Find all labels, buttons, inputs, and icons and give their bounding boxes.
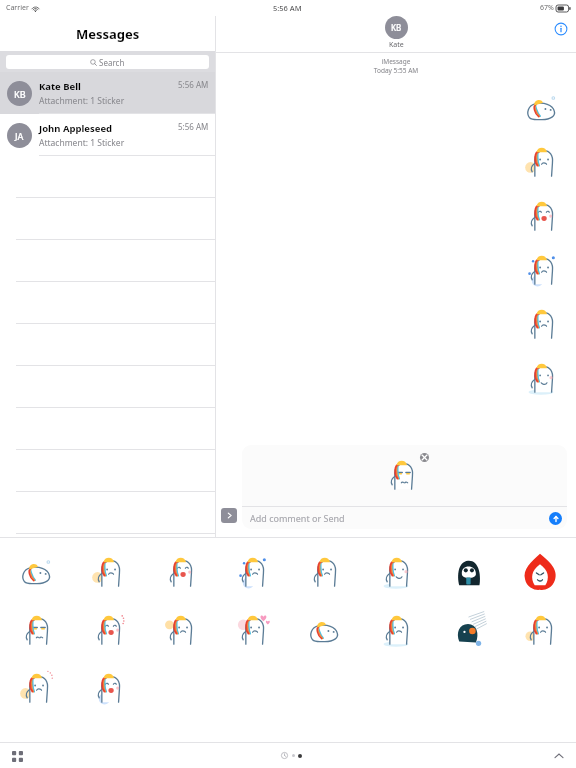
staticText: Today 5:55 AM [216, 66, 576, 75]
staticText: Attachment: 1 Sticker [39, 95, 125, 107]
button[interactable]: JA [0, 114, 215, 156]
button[interactable]: Sticker 7 [442, 547, 494, 599]
staticText: Attachment: 1 Sticker [39, 137, 125, 149]
button[interactable]: Sticker 12 [226, 605, 278, 657]
staticText: Kate Bell [39, 80, 81, 93]
button[interactable]: KB [385, 16, 408, 50]
staticText: KB [14, 88, 26, 100]
button[interactable]: Sticker 1 [10, 547, 62, 599]
button[interactable]: Sticker 9 [10, 605, 62, 657]
button[interactable]: Sticker 5 [298, 547, 350, 599]
button[interactable]: Sticker 13 [298, 605, 350, 657]
staticText: 5:56 AM [178, 121, 209, 132]
staticText: John Appleseed [39, 122, 113, 135]
staticText: 5:56 AM [178, 79, 209, 90]
button[interactable]: Sticker 10 [82, 605, 134, 657]
button[interactable]: Remove sticker [420, 453, 429, 462]
button[interactable]: Sticker 15 [442, 605, 494, 657]
button[interactable]: Sticker message [514, 136, 568, 190]
staticText: 67% [540, 3, 554, 13]
staticText: Add comment or Send [250, 512, 345, 524]
staticText: Search [99, 57, 125, 68]
button[interactable]: Sticker 2 [82, 547, 134, 599]
button[interactable]: Search [6, 55, 209, 69]
button[interactable]: App drawer [9, 748, 25, 764]
button[interactable]: Sticker message [514, 190, 568, 244]
staticText: Kate [389, 40, 404, 50]
button[interactable]: Sticker 14 [370, 605, 422, 657]
button[interactable]: Send [549, 512, 562, 525]
button[interactable]: Add comment or Send [242, 507, 567, 529]
staticText: KB [391, 22, 402, 33]
button[interactable]: Sticker message [514, 352, 568, 406]
button[interactable]: Sticker 18 [82, 663, 134, 715]
button[interactable]: Collapse [551, 748, 567, 764]
staticText: JA [15, 130, 24, 142]
button[interactable]: Sticker 17 [10, 663, 62, 715]
button[interactable]: Sticker 16 [514, 605, 566, 657]
button[interactable]: Sticker 4 [226, 547, 278, 599]
button[interactable]: Sticker message [514, 298, 568, 352]
button[interactable]: Sticker 8 [514, 547, 566, 599]
button[interactable]: Sticker 6 [370, 547, 422, 599]
button[interactable]: Sticker 11 [154, 605, 206, 657]
staticText: iMessage [216, 57, 576, 66]
button[interactable]: Details [553, 21, 569, 37]
button[interactable]: Sticker message [514, 82, 568, 136]
staticText: 5:56 AM [273, 3, 302, 13]
button[interactable]: More apps [221, 508, 237, 523]
button[interactable]: Sticker message [514, 244, 568, 298]
staticText: Carrier [6, 3, 29, 13]
staticText: Messages [76, 25, 140, 43]
button[interactable]: Sticker 3 [154, 547, 206, 599]
button[interactable]: KB [0, 72, 215, 114]
